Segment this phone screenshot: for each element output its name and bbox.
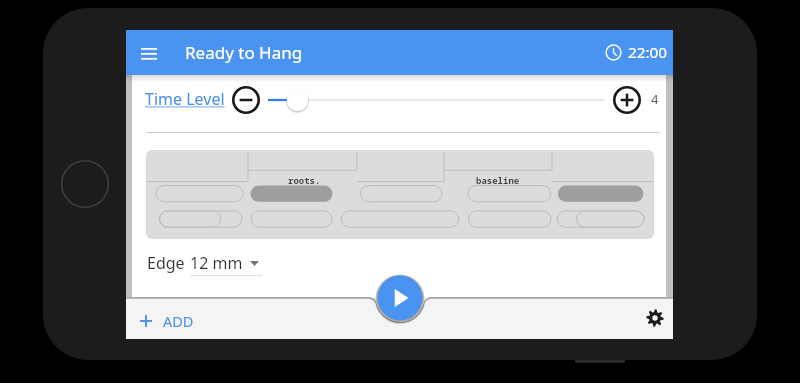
button[interactable]: Play	[374, 272, 426, 324]
button[interactable]: Settings	[643, 306, 666, 329]
button[interactable]: 22:00	[604, 42, 669, 63]
button[interactable]: Increase	[611, 84, 643, 116]
button[interactable]: ADD	[136, 308, 198, 334]
staticText: ADD	[163, 311, 194, 331]
button[interactable]: Time Level	[145, 88, 225, 110]
staticText: roots.	[288, 174, 321, 186]
staticText: 4	[651, 90, 659, 108]
button[interactable]: Menu	[133, 38, 165, 70]
staticText: 22:00	[628, 42, 668, 63]
button[interactable]: Decrease	[230, 84, 262, 116]
staticText: baseline	[476, 174, 520, 186]
staticText: Edge	[147, 252, 185, 274]
staticText: 12 mm	[190, 252, 243, 274]
button[interactable]: 12 mm	[190, 247, 259, 274]
staticText: Ready to Hang	[185, 41, 303, 64]
